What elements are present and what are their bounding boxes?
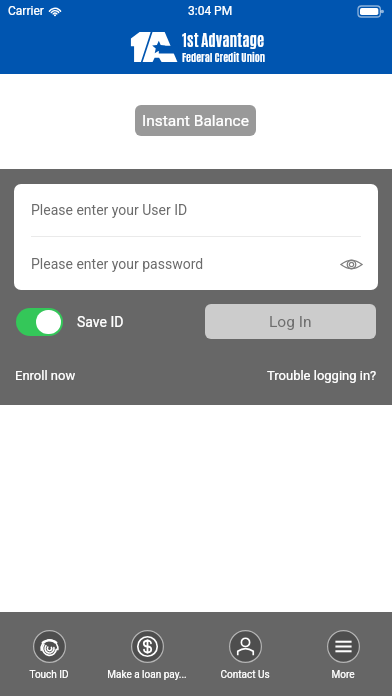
staticText: Trouble logging in? [267, 368, 377, 383]
staticText: Log In [269, 313, 312, 331]
button[interactable]: Touch ID [0, 612, 98, 696]
button[interactable]: Contact Us [196, 612, 294, 696]
button[interactable]: Instant Balance [135, 105, 256, 136]
button[interactable]: Enroll now [15, 368, 76, 383]
staticText: 3:04 PM [188, 4, 233, 18]
staticText: Instant Balance [142, 112, 249, 130]
button[interactable]: Make a loan pay... [98, 612, 196, 696]
button[interactable] [16, 308, 63, 336]
staticText: Enroll now [15, 368, 76, 383]
button[interactable]: More [294, 612, 392, 696]
staticText: More [331, 669, 355, 681]
staticText: 1st Advantage [182, 29, 265, 49]
button[interactable]: Please enter your password [14, 237, 378, 290]
button[interactable]: Show password [337, 250, 365, 278]
button[interactable]: Please enter your User ID [14, 184, 378, 236]
staticText: Federal Credit Union [182, 50, 266, 64]
button[interactable]: Trouble logging in? [267, 368, 377, 383]
staticText: Save ID [77, 314, 124, 330]
staticText: Make a loan pay... [107, 669, 187, 681]
staticText: Touch ID [29, 669, 69, 681]
staticText: Please enter your password [31, 256, 204, 272]
button[interactable]: Log In [205, 304, 376, 339]
staticText: Contact Us [220, 669, 270, 681]
staticText: Carrier [8, 4, 44, 18]
staticText: Please enter your User ID [31, 202, 188, 218]
